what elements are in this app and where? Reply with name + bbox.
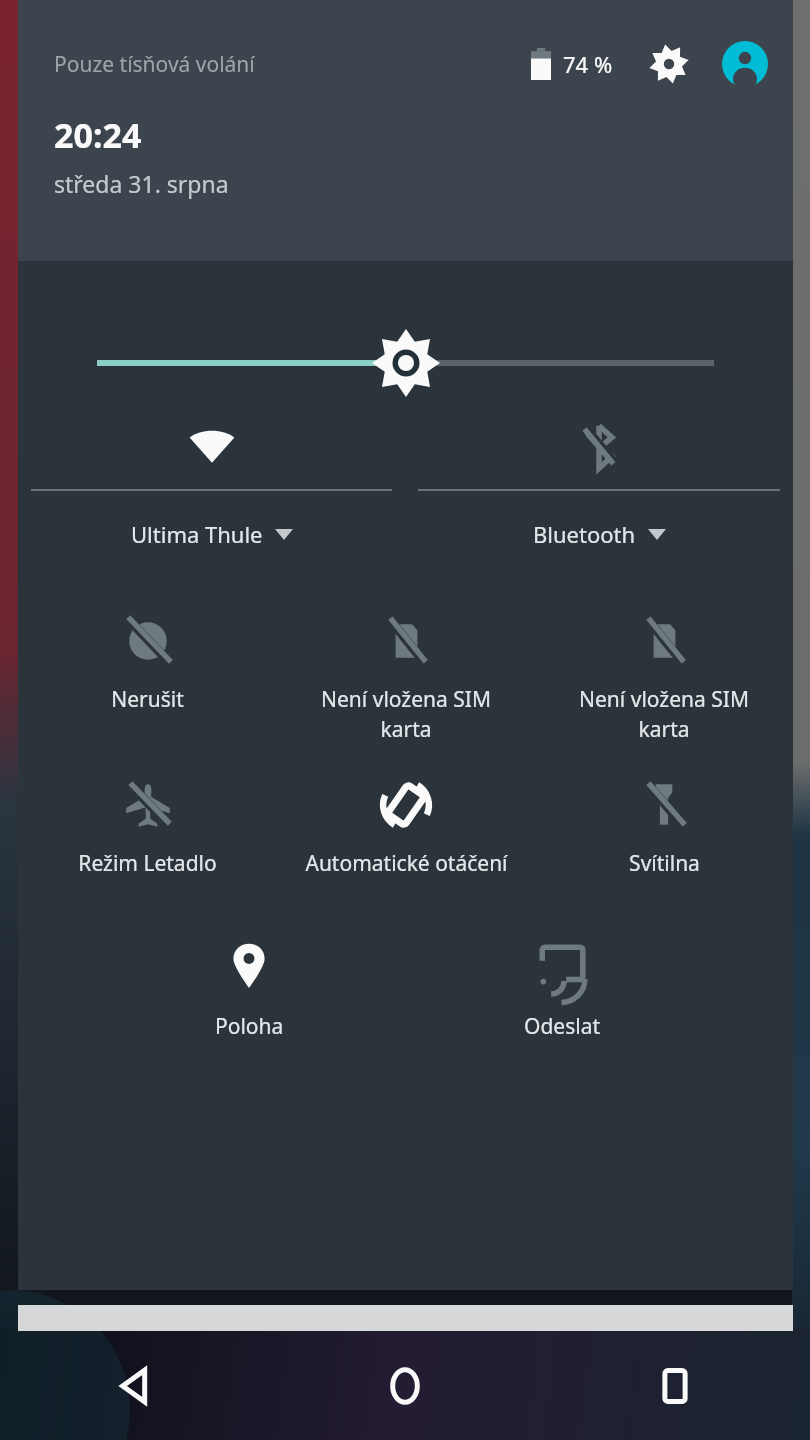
staticText: Automatické otáčení [305,849,508,878]
button[interactable]: Back [0,1332,270,1440]
staticText: Režim Letadlo [78,849,217,878]
staticText: 74 % [563,49,613,79]
staticText: Ultima Thule [131,519,263,549]
button[interactable]: Není vložena SIM karta [535,601,793,751]
button[interactable]: Home [270,1332,540,1440]
button[interactable]: Ultima Thule [18,411,405,549]
button[interactable]: Bluetooth [405,411,793,549]
button[interactable]: Automatické otáčení [277,765,535,886]
button[interactable]: Recents [540,1332,810,1440]
button[interactable]: Nerušit [18,601,277,722]
staticText: středa 31. srpna [54,168,229,199]
staticText: Pouze tísňová volání [54,50,255,79]
button[interactable] [18,261,793,411]
staticText: 20:24 [54,112,142,158]
staticText: Není vložena SIM karta [579,685,749,743]
button[interactable]: Settings [643,38,695,90]
staticText: Není vložena SIM karta [321,685,491,743]
staticText: Odeslat [524,1012,600,1041]
button[interactable]: Režim Letadlo [18,765,277,886]
staticText: Poloha [215,1012,284,1041]
button[interactable]: Odeslat [459,934,665,1041]
staticText: Nerušit [111,685,184,714]
button[interactable]: User profile [719,38,771,90]
button[interactable]: Svítilna [535,765,793,886]
staticText: Bluetooth [533,519,636,549]
button[interactable]: Poloha [146,934,352,1041]
button[interactable]: Není vložena SIM karta [277,601,535,751]
staticText: Svítilna [629,849,700,878]
